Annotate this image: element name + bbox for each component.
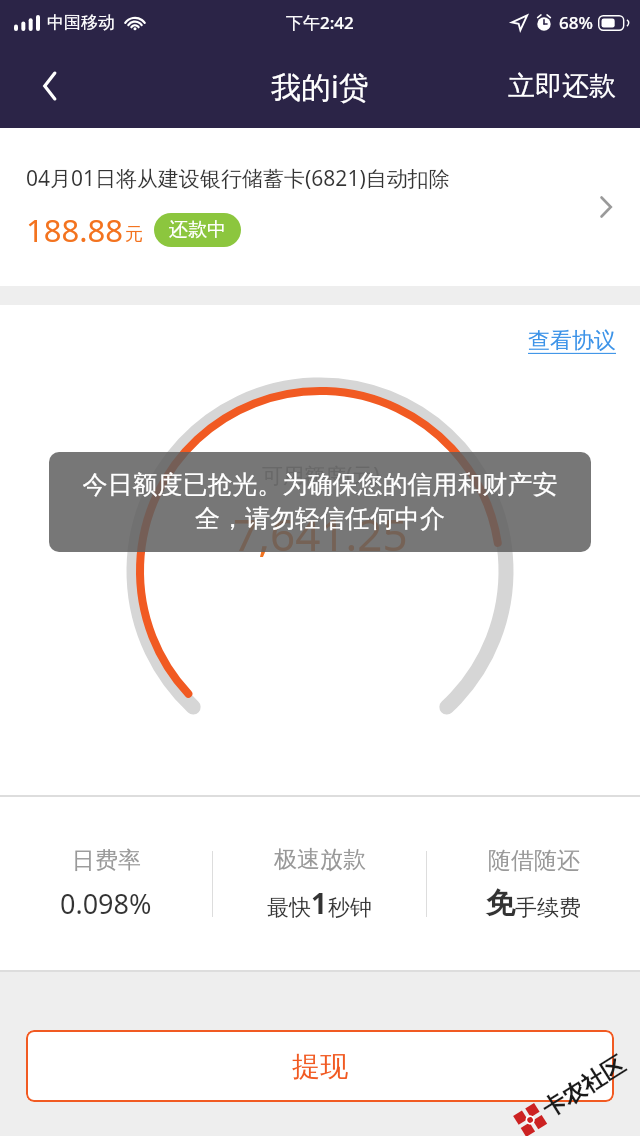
staticText: 日费率 bbox=[72, 846, 141, 875]
staticText: 随借随还 bbox=[488, 846, 580, 875]
staticText: 卡农社区 bbox=[537, 1050, 630, 1124]
staticText: 手续费 bbox=[515, 894, 581, 922]
staticText: 我的i贷 bbox=[271, 66, 369, 107]
staticText: 1 bbox=[311, 884, 328, 922]
button[interactable]: 极速放款 bbox=[213, 797, 426, 970]
staticText: 免 bbox=[486, 885, 515, 922]
button[interactable]: 随借随还 bbox=[427, 797, 640, 970]
staticText: 188.88 bbox=[26, 209, 123, 251]
staticText: 秒钟 bbox=[328, 894, 372, 922]
staticText: 中国移动 bbox=[47, 12, 115, 33]
staticText: 极速放款 bbox=[274, 845, 366, 874]
button[interactable]: 立即还款 bbox=[484, 44, 640, 128]
staticText: 可用额度(元) bbox=[262, 461, 380, 490]
button[interactable]: Back bbox=[0, 44, 100, 128]
staticText: 下午2:42 bbox=[286, 11, 354, 34]
staticText: 提现 bbox=[292, 1049, 348, 1084]
staticText: 今日额度已抢光。为确保您的信用和财产安全，请勿轻信任何中介 bbox=[65, 469, 575, 535]
button[interactable]: 日费率 bbox=[0, 797, 212, 970]
button[interactable]: 04月01日将从建设银行储蓄卡(6821)自动扣除 bbox=[0, 128, 640, 286]
staticText: 0.098% bbox=[60, 885, 152, 922]
staticText: 查看协议 bbox=[528, 327, 616, 355]
staticText: 还款中 bbox=[169, 218, 226, 242]
staticText: 04月01日将从建设银行储蓄卡(6821)自动扣除 bbox=[26, 164, 450, 193]
staticText: 立即还款 bbox=[508, 69, 616, 103]
staticText: 68% bbox=[559, 11, 593, 34]
staticText: 7,641.25 bbox=[233, 504, 408, 564]
staticText: 元 bbox=[125, 223, 143, 246]
button[interactable]: 提现 bbox=[26, 1030, 614, 1102]
staticText: 最快 bbox=[267, 894, 311, 922]
button[interactable]: 查看协议 bbox=[528, 327, 616, 355]
